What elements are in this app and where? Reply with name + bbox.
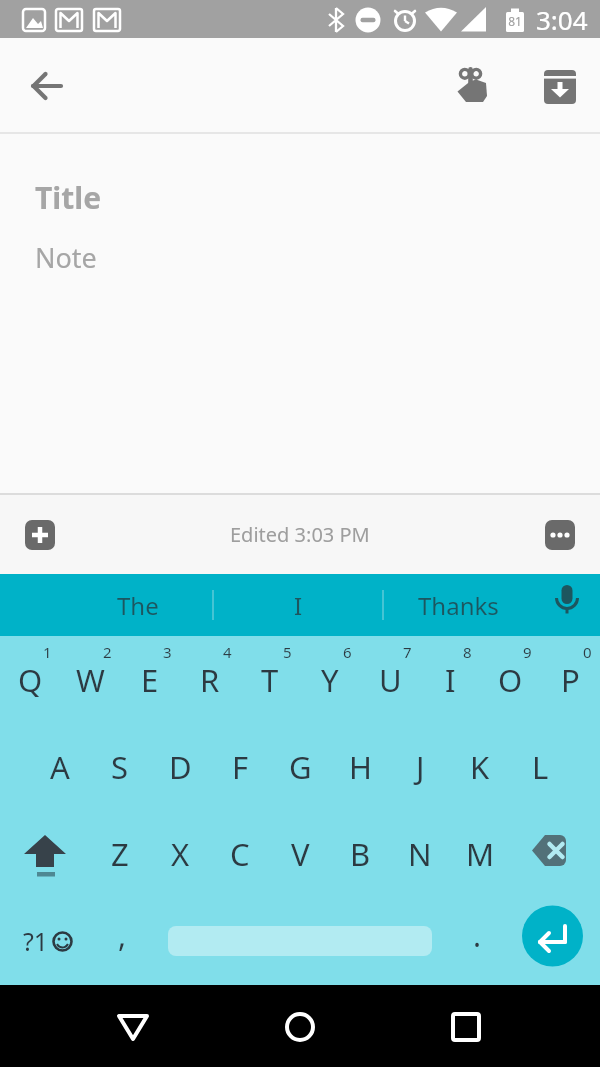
staticText: Q — [18, 659, 43, 701]
staticText: 9 — [523, 642, 532, 662]
button[interactable] — [23, 62, 71, 110]
staticText: V — [291, 833, 310, 875]
button[interactable] — [103, 997, 163, 1057]
button[interactable] — [25, 520, 55, 550]
button[interactable] — [545, 520, 575, 550]
staticText: 2 — [103, 642, 112, 662]
staticText: Edited 3:03 PM — [230, 521, 370, 548]
button[interactable] — [505, 897, 600, 985]
button[interactable]: P — [540, 636, 600, 723]
button[interactable]: Q — [0, 636, 60, 723]
staticText: J — [416, 746, 425, 788]
staticText: Z — [111, 833, 129, 875]
staticText: Y — [321, 659, 339, 701]
button[interactable]: N — [390, 810, 450, 897]
staticText: N — [408, 833, 432, 875]
staticText: A — [50, 746, 70, 788]
staticText: Title — [35, 177, 102, 218]
staticText: L — [532, 746, 549, 788]
button[interactable]: Thanks — [398, 574, 518, 636]
staticText: H — [349, 746, 372, 788]
button[interactable]: W — [60, 636, 120, 723]
button[interactable]: R — [180, 636, 240, 723]
staticText: 1 — [43, 642, 52, 662]
button[interactable] — [150, 897, 450, 985]
button[interactable]: D — [150, 723, 210, 810]
button[interactable]: I — [420, 636, 480, 723]
button[interactable]: The — [78, 574, 198, 636]
button[interactable]: C — [210, 810, 270, 897]
staticText: The — [117, 589, 159, 622]
button[interactable]: I — [238, 574, 358, 636]
button[interactable]: M — [450, 810, 510, 897]
button[interactable]: O — [480, 636, 540, 723]
staticText: G — [289, 746, 312, 788]
button[interactable]: . — [450, 897, 505, 985]
button[interactable] — [448, 60, 496, 108]
staticText: 0 — [583, 642, 592, 662]
button[interactable] — [536, 63, 584, 111]
button[interactable]: G — [270, 723, 330, 810]
staticText: 8 — [463, 642, 472, 662]
button[interactable] — [0, 810, 90, 897]
button[interactable]: A — [30, 723, 90, 810]
staticText: Note — [35, 239, 97, 276]
button[interactable] — [436, 997, 496, 1057]
staticText: I — [294, 589, 303, 622]
button[interactable]: J — [390, 723, 450, 810]
button[interactable]: ?1 — [0, 897, 95, 985]
staticText: X — [171, 833, 190, 875]
button[interactable]: E — [120, 636, 180, 723]
staticText: C — [230, 833, 250, 875]
staticText: 4 — [223, 642, 232, 662]
staticText: O — [498, 659, 523, 701]
staticText: K — [470, 746, 490, 788]
staticText: 6 — [343, 642, 352, 662]
button[interactable]: B — [330, 810, 390, 897]
button[interactable]: Y — [300, 636, 360, 723]
staticText: 7 — [403, 642, 412, 662]
staticText: F — [232, 746, 249, 788]
staticText: ?1 — [23, 924, 49, 958]
button[interactable]: Z — [90, 810, 150, 897]
staticText: E — [141, 659, 159, 701]
staticText: T — [261, 659, 279, 701]
button[interactable] — [543, 580, 591, 628]
staticText: 3 — [163, 642, 172, 662]
button[interactable]: L — [510, 723, 570, 810]
staticText: 3:04 — [536, 2, 588, 37]
staticText: , — [118, 915, 127, 956]
staticText: R — [200, 659, 220, 701]
button[interactable]: Title — [0, 134, 600, 493]
button[interactable]: X — [150, 810, 210, 897]
staticText: B — [350, 833, 371, 875]
button[interactable]: H — [330, 723, 390, 810]
staticText: D — [169, 746, 192, 788]
staticText: . — [473, 915, 482, 956]
button[interactable]: U — [360, 636, 420, 723]
button[interactable]: V — [270, 810, 330, 897]
staticText: 81 — [506, 13, 524, 29]
staticText: I — [445, 659, 456, 701]
button[interactable]: S — [90, 723, 150, 810]
staticText: 5 — [283, 642, 292, 662]
button[interactable]: T — [240, 636, 300, 723]
staticText: P — [561, 659, 580, 701]
staticText: U — [379, 659, 402, 701]
staticText: Thanks — [418, 589, 499, 622]
button[interactable] — [510, 810, 600, 897]
button[interactable]: K — [450, 723, 510, 810]
button[interactable] — [270, 997, 330, 1057]
staticText: S — [111, 746, 129, 788]
button[interactable]: , — [95, 897, 150, 985]
staticText: W — [76, 659, 105, 701]
staticText: M — [466, 833, 495, 875]
button[interactable]: F — [210, 723, 270, 810]
